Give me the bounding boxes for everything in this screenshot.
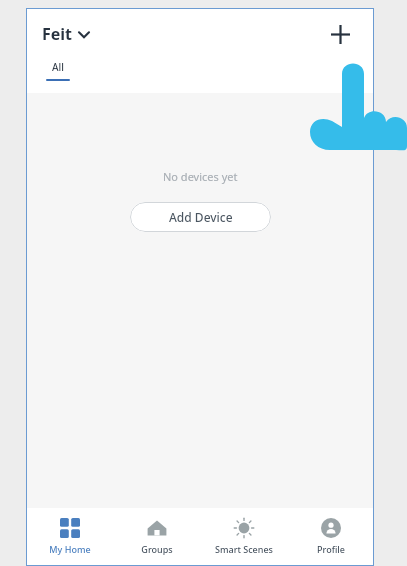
button[interactable]: Add device bbox=[320, 14, 360, 54]
button[interactable]: Groups bbox=[113, 508, 200, 566]
button[interactable]: Smart Scenes bbox=[200, 508, 287, 566]
staticText: My Home bbox=[49, 543, 91, 555]
staticText: No devices yet bbox=[163, 169, 238, 184]
button[interactable]: Profile bbox=[287, 508, 374, 566]
staticText: Groups bbox=[141, 543, 173, 555]
button[interactable]: All bbox=[46, 60, 70, 81]
button[interactable]: Feit bbox=[40, 19, 91, 49]
staticText: Profile bbox=[317, 543, 345, 555]
button[interactable]: My Home bbox=[26, 508, 113, 566]
staticText: All bbox=[52, 60, 64, 74]
staticText: Feit bbox=[42, 23, 73, 45]
staticText: Add Device bbox=[169, 209, 233, 225]
button[interactable]: Add Device bbox=[130, 202, 271, 232]
staticText: Smart Scenes bbox=[215, 543, 273, 555]
